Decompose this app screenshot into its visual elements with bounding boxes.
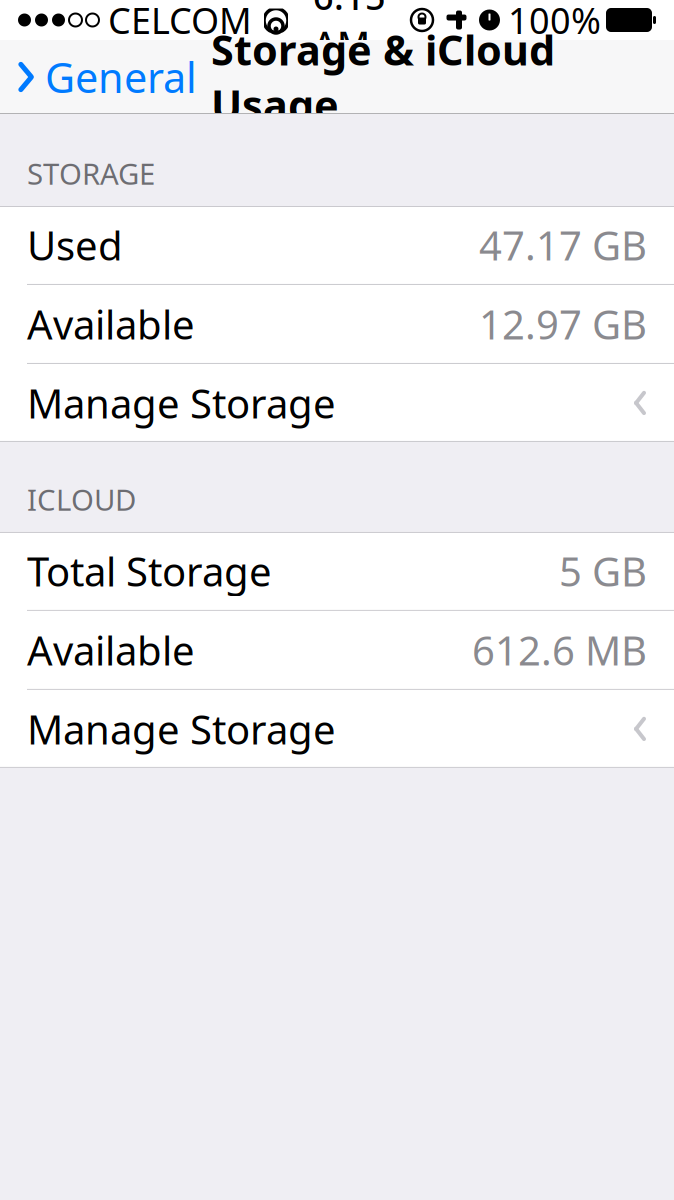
staticText: General (45, 50, 197, 104)
staticText: Available (27, 623, 195, 676)
staticText: Total Storage (27, 544, 272, 597)
staticText: 12.97 GB (479, 297, 647, 350)
staticText: Manage Storage (27, 702, 336, 755)
staticText: Storage & iCloud Usage (211, 22, 555, 132)
button[interactable]: Manage Storage (0, 690, 674, 768)
staticText: Manage Storage (27, 376, 336, 429)
staticText: Available (27, 297, 195, 350)
button[interactable]: General (0, 40, 197, 114)
staticText: 100% (508, 0, 601, 44)
staticText: 5 GB (559, 544, 647, 597)
staticText: CELCOM (108, 0, 252, 44)
button[interactable]: Manage Storage (0, 364, 674, 442)
staticText: Used (27, 218, 123, 271)
staticText: ICLOUD (27, 480, 136, 519)
staticText: 612.6 MB (472, 623, 647, 676)
staticText: 47.17 GB (479, 218, 647, 271)
staticText: 6:15 AM (313, 0, 386, 68)
staticText: STORAGE (27, 154, 155, 193)
